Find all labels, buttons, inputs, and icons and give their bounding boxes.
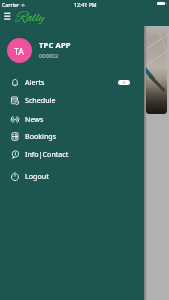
staticText: Rally xyxy=(16,9,45,27)
button[interactable]: Open navigation menu xyxy=(0,8,15,24)
staticText: Info|Contact xyxy=(25,149,69,159)
staticText: Carrier xyxy=(2,1,20,8)
staticText: 000002 xyxy=(39,52,59,60)
button[interactable]: TA xyxy=(0,33,144,67)
staticText: TA xyxy=(14,45,25,57)
staticText: Logout xyxy=(25,171,49,181)
staticText: News xyxy=(25,114,44,124)
staticText: Alerts xyxy=(25,77,45,87)
button[interactable]: Bookings xyxy=(0,127,144,145)
button[interactable]: Alerts xyxy=(0,73,144,91)
button[interactable]: Info|Contact xyxy=(0,145,144,163)
staticText: 12:41 PM xyxy=(74,1,97,8)
button[interactable]: News xyxy=(0,110,144,128)
staticText: 0 xyxy=(123,80,126,85)
staticText: TPC APP xyxy=(39,40,71,50)
button[interactable]: Logout xyxy=(0,167,144,185)
staticText: Bookings xyxy=(25,131,57,141)
staticText: Schedule xyxy=(25,95,56,105)
button[interactable]: Schedule xyxy=(0,91,144,109)
